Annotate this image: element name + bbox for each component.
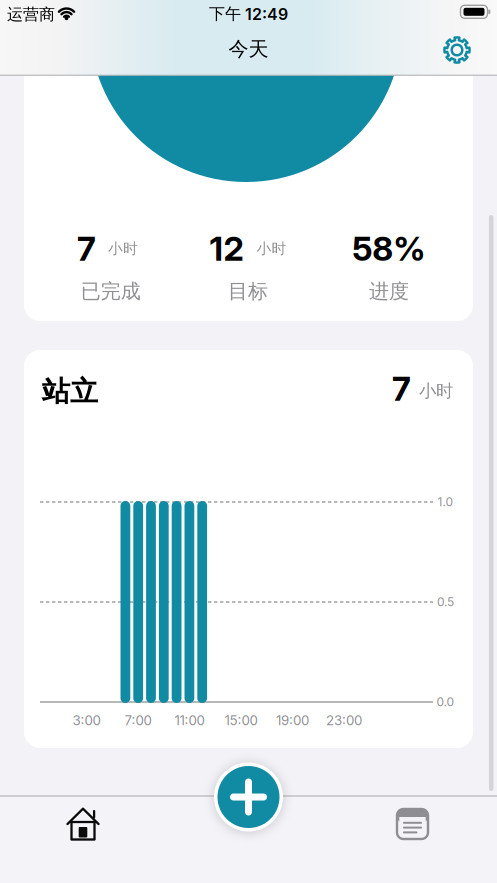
staticText: 7:00 <box>124 713 151 728</box>
staticText: 今天 <box>228 37 268 61</box>
button[interactable]: 主页 <box>65 807 100 840</box>
staticText: 已完成 <box>81 279 141 304</box>
staticText: 3:00 <box>72 713 100 728</box>
staticText: 11:00 <box>174 713 204 728</box>
staticText: 0.0 <box>436 695 454 709</box>
staticText: 目标 <box>228 279 268 304</box>
button[interactable]: 添加 <box>214 762 283 831</box>
staticText: 1.0 <box>437 495 453 509</box>
staticText: 运营商 <box>7 5 55 24</box>
staticText: 7 <box>392 369 411 408</box>
staticText: 58% <box>352 229 425 268</box>
button[interactable]: 设置 <box>442 35 472 65</box>
staticText: 小时 <box>108 239 138 257</box>
staticText: 23:00 <box>326 713 362 728</box>
staticText: 15:00 <box>224 713 257 728</box>
staticText: 0.5 <box>437 595 454 609</box>
staticText: 12 <box>210 229 244 268</box>
staticText: 7 <box>77 229 96 268</box>
staticText: 站立 <box>42 374 98 409</box>
staticText: 小时 <box>256 239 286 257</box>
staticText: 小时 <box>419 380 453 402</box>
button[interactable]: 记录 <box>397 809 428 839</box>
staticText: 19:00 <box>276 713 309 728</box>
staticText: 进度 <box>369 279 409 304</box>
staticText: 下午 12:49 <box>209 4 288 24</box>
